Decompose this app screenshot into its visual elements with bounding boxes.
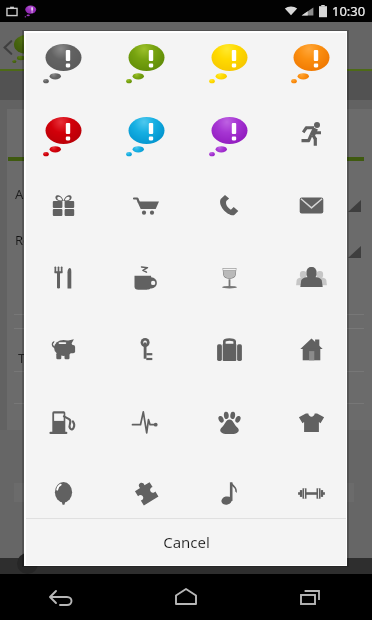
button[interactable]: Red alert	[26, 94, 105, 167]
button[interactable]: Cancel	[26, 519, 346, 565]
button[interactable]: Purple alert	[188, 94, 271, 167]
staticText: Time	[18, 349, 49, 367]
button[interactable]: Grey alert	[26, 33, 105, 94]
button[interactable]: Fitness	[270, 456, 346, 529]
button[interactable]: Key	[105, 311, 188, 384]
button[interactable]: Fuel	[26, 384, 105, 457]
button[interactable]: Back	[0, 574, 124, 620]
button[interactable]: Mail	[270, 166, 346, 239]
staticText: Activity	[15, 185, 59, 203]
button[interactable]: Recent apps	[248, 574, 372, 620]
button[interactable]: People	[270, 239, 346, 312]
button[interactable]: Phone	[188, 166, 271, 239]
button[interactable]: Party	[26, 456, 105, 529]
button[interactable]: Health	[105, 384, 188, 457]
button[interactable]: Running	[270, 94, 346, 167]
staticText: Cancel	[163, 532, 210, 552]
button[interactable]: Restaurant	[26, 239, 105, 312]
button[interactable]: Music	[188, 456, 271, 529]
button[interactable]: Work	[188, 311, 271, 384]
button[interactable]: Drinks	[188, 239, 271, 312]
button[interactable]: Home	[124, 574, 248, 620]
button[interactable]: Coffee	[105, 239, 188, 312]
staticText: 10:30	[332, 2, 366, 20]
button[interactable]: Home	[270, 311, 346, 384]
button[interactable]: Clothes	[270, 384, 346, 457]
button[interactable]: Shopping	[105, 166, 188, 239]
button[interactable]: Orange alert	[270, 33, 346, 94]
button[interactable]: Games	[105, 456, 188, 529]
button[interactable]: Gift	[26, 166, 105, 239]
staticText: Recurrence	[15, 231, 85, 249]
button[interactable]: Blue alert	[105, 94, 188, 167]
button[interactable]: Savings	[26, 311, 105, 384]
button[interactable]: Pets	[188, 384, 271, 457]
button[interactable]: Green alert	[105, 33, 188, 94]
button[interactable]: Yellow alert	[188, 33, 271, 94]
